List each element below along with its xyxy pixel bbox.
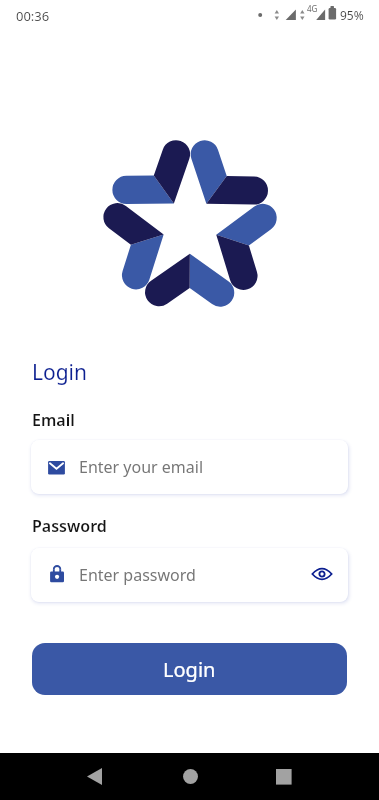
- button[interactable]: Enter password: [31, 548, 348, 602]
- staticText: Login: [32, 358, 88, 387]
- staticText: Password: [32, 515, 107, 537]
- staticText: 00:36: [16, 7, 50, 25]
- staticText: 95%: [340, 7, 364, 23]
- staticText: Email: [32, 409, 75, 431]
- staticText: 4G: [307, 3, 318, 14]
- staticText: Enter password: [79, 564, 196, 586]
- button[interactable]: Home: [166, 760, 214, 793]
- staticText: Login: [163, 656, 216, 683]
- button[interactable]: Show password: [312, 564, 332, 584]
- button[interactable]: Login: [32, 643, 347, 695]
- staticText: Enter your email: [79, 456, 204, 478]
- button[interactable]: Enter your email: [31, 440, 348, 494]
- button[interactable]: Back: [70, 760, 118, 793]
- button[interactable]: Recents: [260, 760, 308, 793]
